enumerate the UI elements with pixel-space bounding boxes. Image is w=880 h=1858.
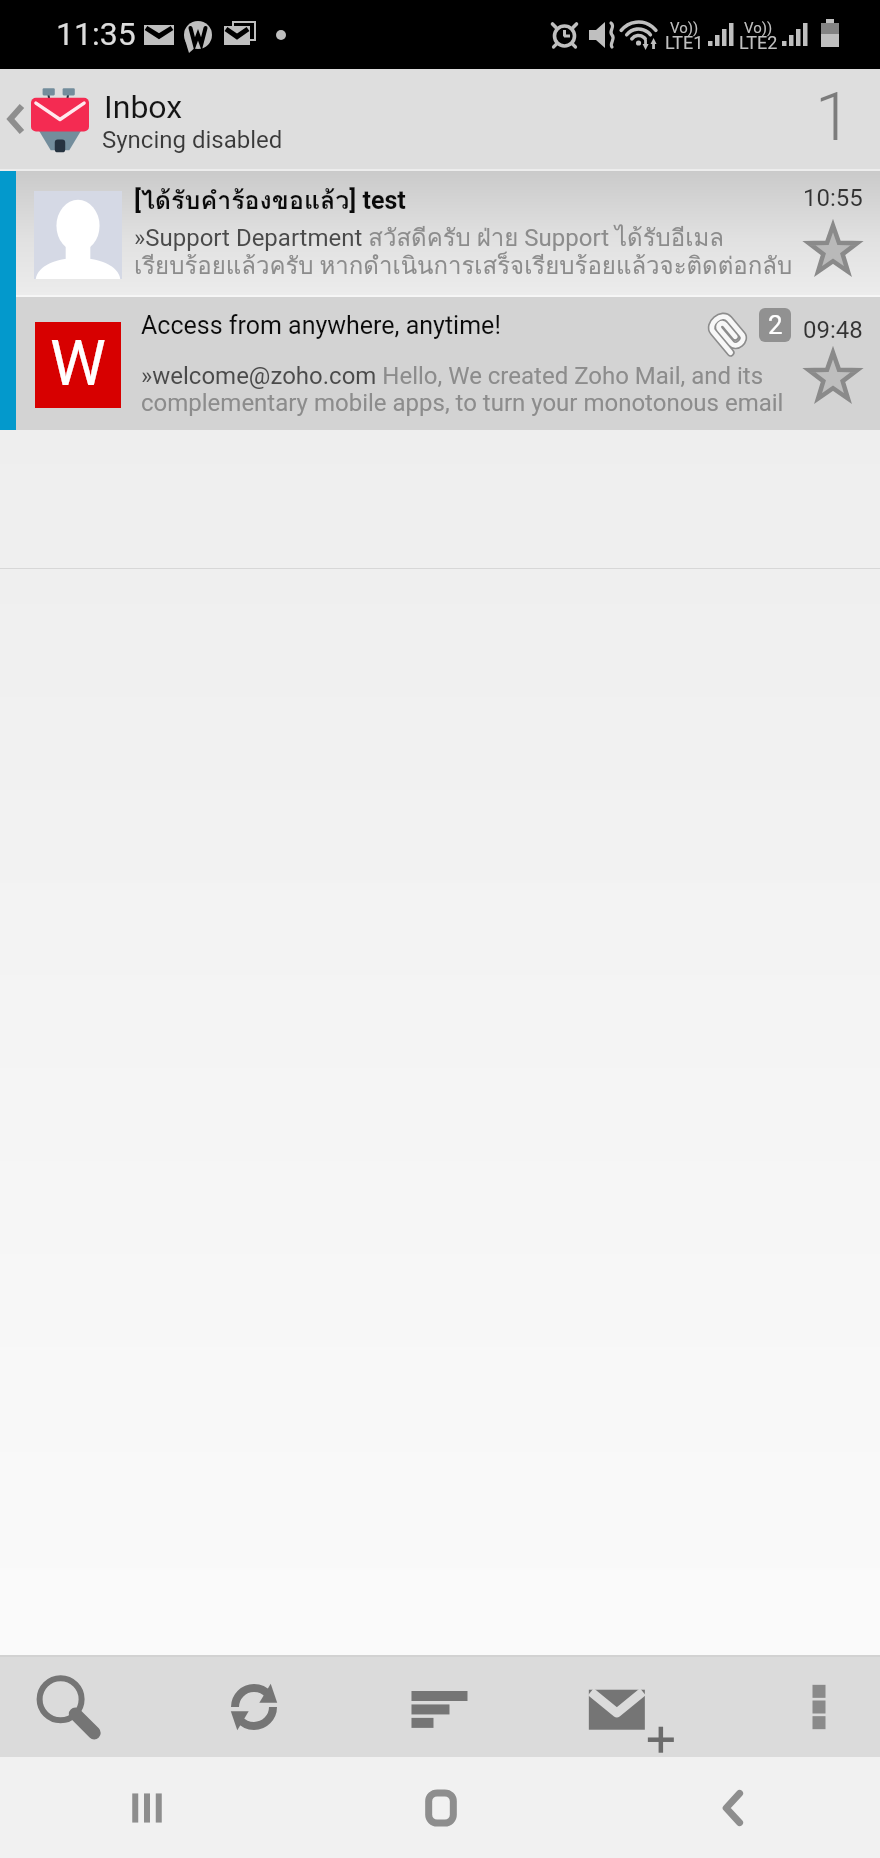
button[interactable]: [ได้รับคำร้องขอแล้ว] test (0, 171, 880, 295)
staticText: Syncing disabled (102, 126, 283, 154)
staticText: »welcome@zoho.com Hello, We created Zoho… (141, 362, 804, 417)
button[interactable]: Navigate up (0, 69, 880, 169)
staticText: W (50, 327, 106, 401)
button[interactable]: Recent apps (0, 1757, 294, 1858)
button[interactable]: Refresh (207, 1657, 301, 1757)
staticText: LTE2 (739, 32, 778, 53)
staticText: »Support Department สวัสดีครับ ฝ่าย Supp… (134, 218, 804, 285)
button[interactable]: Home (294, 1757, 587, 1858)
staticText: LTE1 (665, 32, 704, 53)
staticText: Vo)) (670, 19, 699, 37)
button[interactable]: Back (587, 1757, 880, 1858)
button[interactable]: Star message (806, 224, 860, 278)
staticText: [ได้รับคำร้องขอแล้ว] test (134, 180, 406, 220)
staticText: Inbox (104, 88, 183, 126)
staticText: 2 (768, 310, 783, 340)
staticText: 10:55 (803, 184, 863, 212)
staticText: Access from anywhere, anytime! (141, 311, 501, 340)
staticText: 1 (815, 79, 852, 156)
other: Navigate up (8, 102, 25, 136)
staticText: Vo)) (744, 19, 773, 37)
button[interactable]: Sort (392, 1657, 486, 1757)
button[interactable]: W (0, 297, 880, 430)
button[interactable]: Star message (806, 351, 860, 405)
staticText: 11:35 (56, 15, 136, 53)
button[interactable]: More options (772, 1657, 866, 1757)
button[interactable]: Compose message (570, 1657, 664, 1757)
staticText: 09:48 (803, 316, 863, 344)
button[interactable]: Search (20, 1657, 114, 1757)
